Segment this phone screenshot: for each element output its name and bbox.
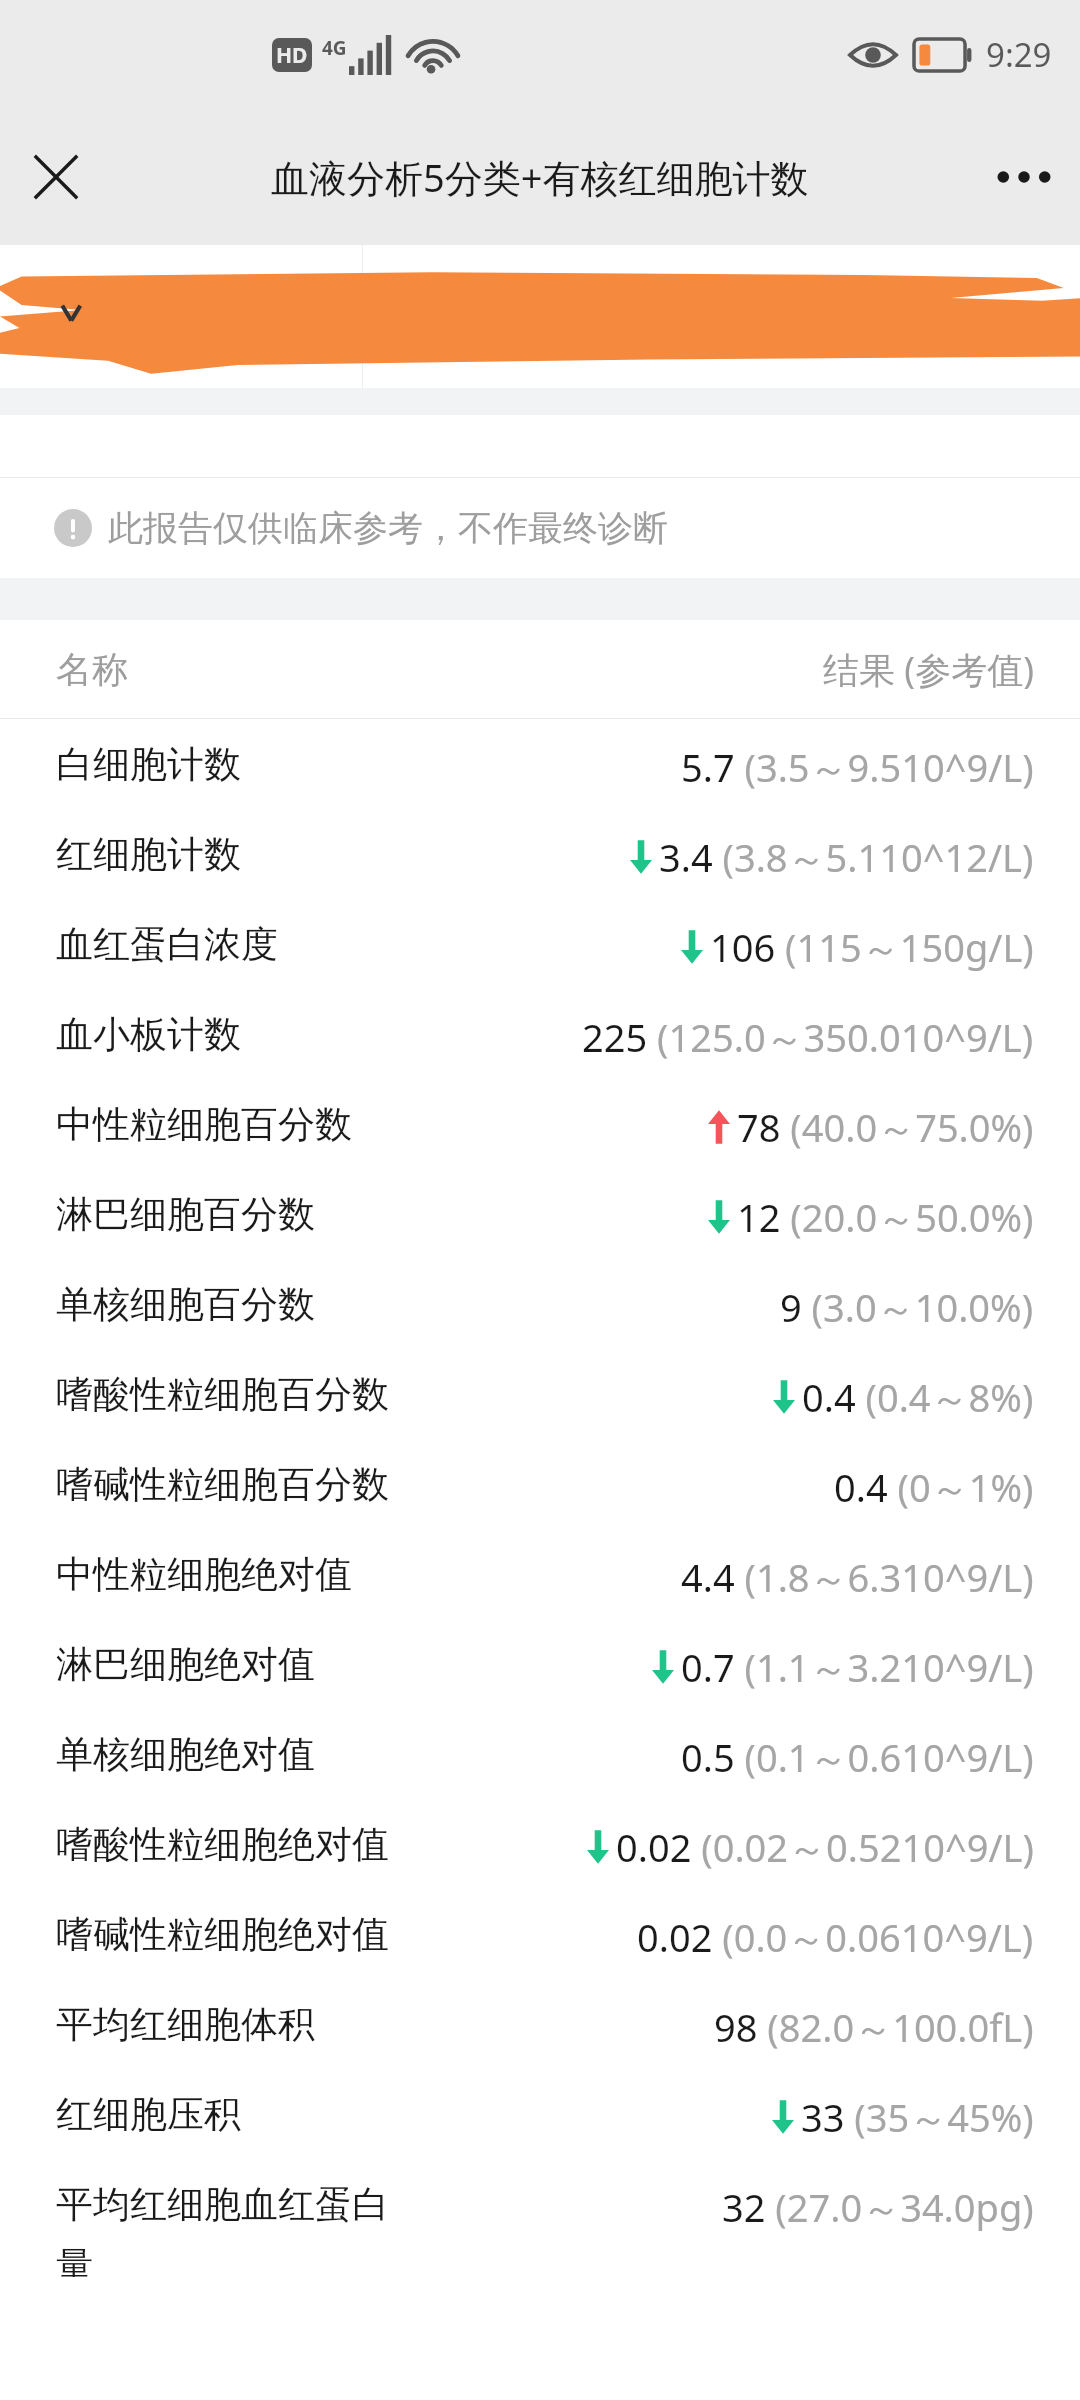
staticText: 血液分析5分类+有核红细胞计数	[271, 151, 809, 203]
staticText: 中性粒细胞百分数	[56, 1101, 352, 1148]
staticText: HD	[276, 41, 308, 70]
staticText: 淋巴细胞百分数	[56, 1191, 315, 1238]
button[interactable]: 嗜酸性粒细胞绝对值	[0, 1799, 1080, 1889]
staticText: 3.4 (3.8～5.110^12/L)	[659, 831, 1034, 883]
button[interactable]: 嗜碱性粒细胞绝对值	[0, 1889, 1080, 1979]
staticText: 此报告仅供临床参考，不作最终诊断	[108, 506, 668, 550]
staticText: 5.7 (3.5～9.510^9/L)	[681, 741, 1034, 793]
button[interactable]: 淋巴细胞百分数	[0, 1169, 1080, 1259]
staticText: 平均红细胞体积	[56, 2001, 315, 2048]
staticText: 0.7 (1.1～3.210^9/L)	[681, 1641, 1034, 1693]
staticText: 4G	[322, 35, 347, 61]
staticText: 白细胞计数	[56, 741, 241, 788]
button[interactable]: 关闭	[14, 135, 98, 219]
staticText: 淋巴细胞绝对值	[56, 1641, 315, 1688]
button[interactable]: 中性粒细胞百分数	[0, 1079, 1080, 1169]
staticText: 0.02 (0.0～0.0610^9/L)	[637, 1911, 1034, 1963]
button[interactable]: 白细胞计数	[0, 719, 1080, 809]
staticText: 嗜碱性粒细胞百分数	[56, 1461, 389, 1508]
staticText: 225 (125.0～350.010^9/L)	[582, 1011, 1034, 1063]
staticText: 血红蛋白浓度	[56, 921, 278, 968]
staticText: 名称	[56, 647, 128, 692]
staticText: 红细胞计数	[56, 831, 241, 878]
staticText: 98 (82.0～100.0fL)	[714, 2001, 1034, 2053]
staticText: 平均红细胞血红蛋白 量	[56, 2181, 389, 2277]
staticText: 106 (115～150g/L)	[710, 921, 1034, 973]
staticText: 9 (3.0～10.0%)	[780, 1281, 1034, 1333]
button[interactable]: 淋巴细胞绝对值	[0, 1619, 1080, 1709]
staticText: 嗜酸性粒细胞绝对值	[56, 1821, 389, 1868]
button[interactable]: 红细胞压积	[0, 2069, 1080, 2159]
staticText: 嗜酸性粒细胞百分数	[56, 1371, 389, 1418]
staticText: 78 (40.0～75.0%)	[737, 1101, 1034, 1153]
staticText: 0.02 (0.02～0.5210^9/L)	[616, 1821, 1034, 1873]
staticText: 4.4 (1.8～6.310^9/L)	[681, 1551, 1034, 1603]
staticText: 血小板计数	[56, 1011, 241, 1058]
staticText: 12 (20.0～50.0%)	[737, 1191, 1034, 1243]
staticText: 9:29	[986, 32, 1052, 77]
staticText: 结果 (参考值)	[823, 645, 1034, 694]
button[interactable]: 嗜酸性粒细胞百分数	[0, 1349, 1080, 1439]
button[interactable]: 单核细胞绝对值	[0, 1709, 1080, 1799]
staticText: 0.4 (0.4～8%)	[802, 1371, 1034, 1423]
button[interactable]: 血红蛋白浓度	[0, 899, 1080, 989]
staticText: 单核细胞百分数	[56, 1281, 315, 1328]
button[interactable]: 红细胞计数	[0, 809, 1080, 899]
staticText: 33 (35～45%)	[801, 2091, 1034, 2143]
staticText: 中性粒细胞绝对值	[56, 1551, 352, 1598]
staticText: 0.4 (0～1%)	[834, 1461, 1034, 1513]
button[interactable]: 平均红细胞血红蛋白 量	[0, 2159, 1080, 2277]
staticText: 0.5 (0.1～0.610^9/L)	[681, 1731, 1034, 1783]
staticText: 单核细胞绝对值	[56, 1731, 315, 1778]
button[interactable]: 嗜碱性粒细胞百分数	[0, 1439, 1080, 1529]
button[interactable]: 单核细胞百分数	[0, 1259, 1080, 1349]
staticText: 红细胞压积	[56, 2091, 241, 2138]
button[interactable]: 血小板计数	[0, 989, 1080, 1079]
staticText: 32 (27.0～34.0pg)	[722, 2181, 1034, 2233]
staticText: 嗜碱性粒细胞绝对值	[56, 1911, 389, 1958]
button[interactable]: 平均红细胞体积	[0, 1979, 1080, 2069]
button[interactable]: 更多	[982, 135, 1066, 219]
button[interactable]: 中性粒细胞绝对值	[0, 1529, 1080, 1619]
